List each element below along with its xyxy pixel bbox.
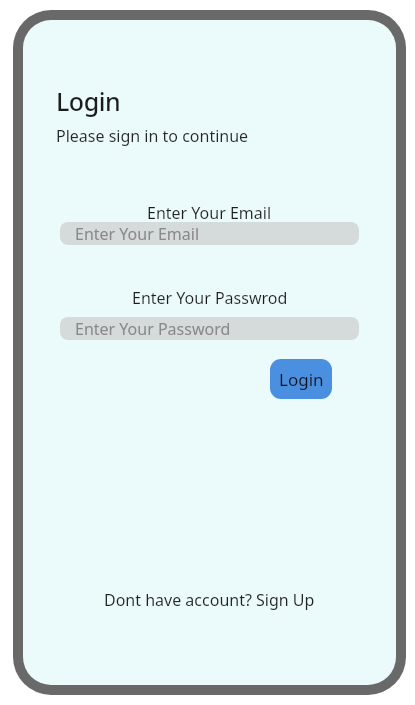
staticText: Please sign in to continue [56,125,249,147]
staticText: Enter Your Passwrod [132,287,288,309]
button[interactable]: Enter Your Password [60,317,359,340]
button[interactable]: Enter Your Email [60,222,359,245]
staticText: Enter Your Email [75,223,200,245]
staticText: Login [56,84,121,118]
staticText: Enter Your Email [147,202,272,224]
staticText: Dont have account? Sign Up [104,589,315,611]
staticText: Enter Your Password [75,318,231,340]
button[interactable]: Login [270,359,332,399]
staticText: Login [279,368,324,391]
button[interactable]: Dont have account? Sign Up [23,588,396,612]
